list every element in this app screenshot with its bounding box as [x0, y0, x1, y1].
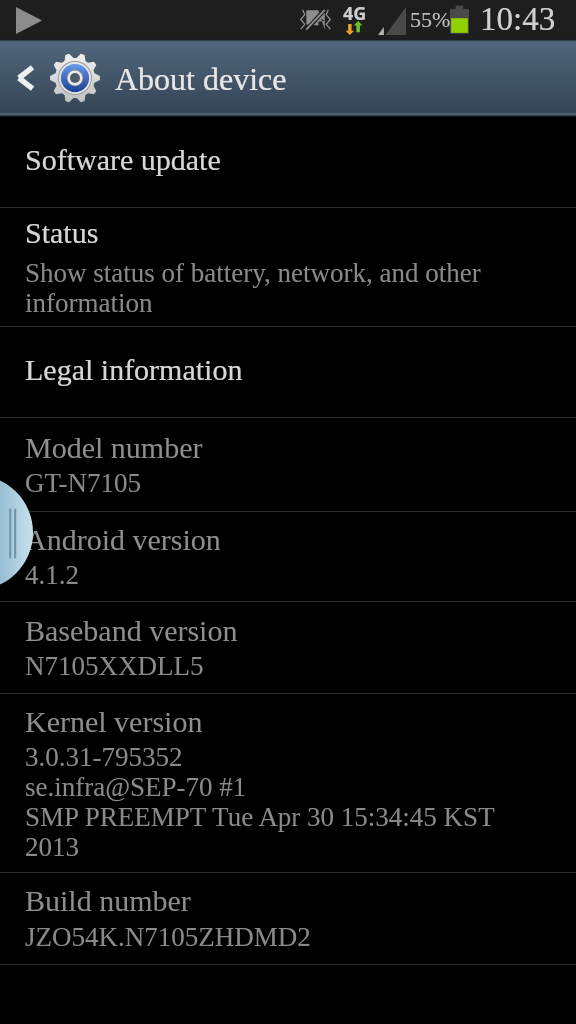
staticText: Show status of battery, network, and oth…: [25, 258, 525, 318]
staticText: GT-N7105: [25, 468, 142, 498]
button[interactable]: Software update: [0, 117, 576, 207]
staticText: Kernel version: [25, 705, 203, 738]
button[interactable]: Model number: [0, 418, 576, 511]
staticText: Build number: [25, 884, 191, 917]
button[interactable]: Status: [0, 208, 576, 326]
staticText: Model number: [25, 431, 203, 464]
staticText: Status: [25, 216, 99, 249]
staticText: JZO54K.N7105ZHDMD2: [25, 922, 311, 952]
staticText: About device: [115, 61, 287, 96]
button[interactable]: Android version: [0, 512, 576, 601]
staticText: 4.1.2: [25, 560, 79, 590]
staticText: N7105XXDLL5: [25, 651, 204, 681]
staticText: 3.0.31-795352 se.infra@SEP-70 #1 SMP PRE…: [25, 742, 525, 862]
button[interactable]: Baseband version: [0, 602, 576, 693]
staticText: 55%: [410, 7, 451, 31]
staticText: 10:43: [480, 1, 556, 38]
staticText: Baseband version: [25, 614, 238, 647]
staticText: 4G: [343, 1, 367, 26]
button[interactable]: Build number: [0, 873, 576, 964]
button[interactable]: Legal information: [0, 327, 576, 417]
staticText: Android version: [25, 523, 221, 556]
button[interactable]: Pause recording: [0, 475, 33, 590]
button[interactable]: Navigate up: [0, 39, 50, 117]
staticText: Legal information: [25, 353, 243, 386]
staticText: Software update: [25, 143, 221, 176]
button[interactable]: Kernel version: [0, 694, 576, 872]
